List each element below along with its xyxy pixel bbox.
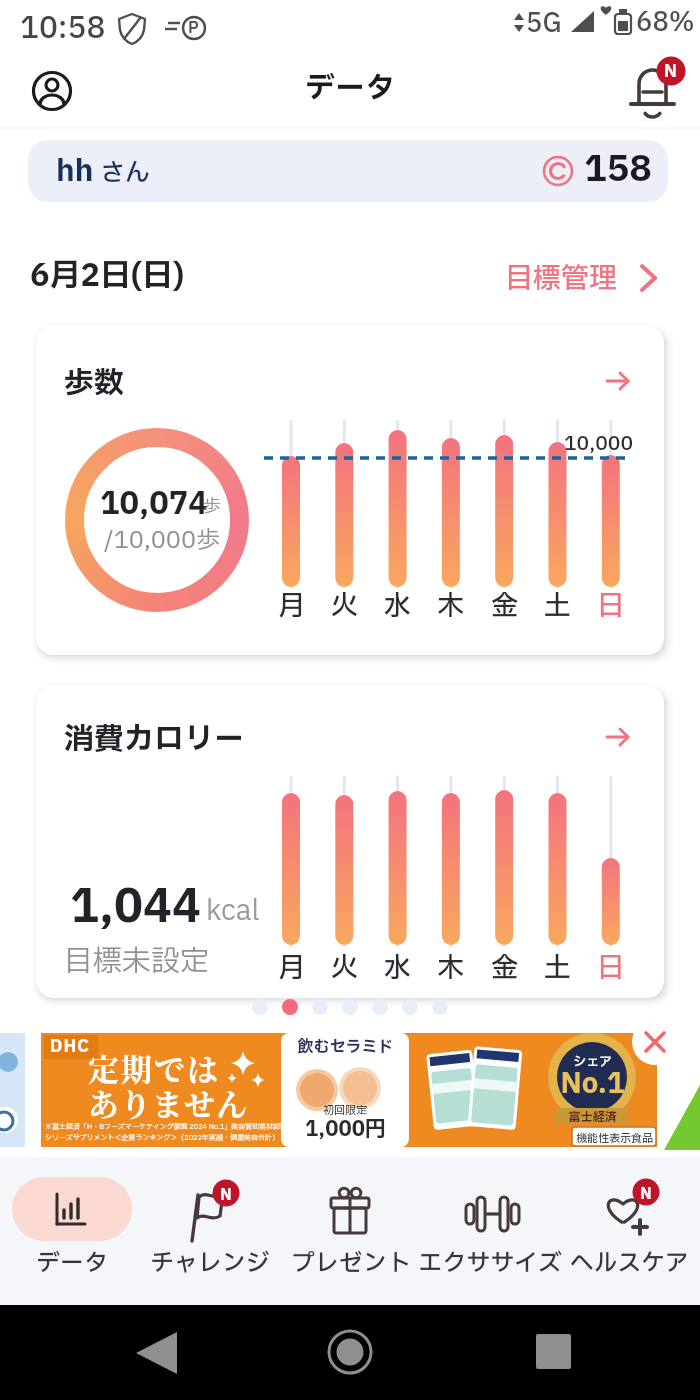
staticText: 68% xyxy=(636,3,695,42)
staticText: N xyxy=(220,1184,232,1206)
button[interactable] xyxy=(41,1033,657,1147)
staticText: 定期では xyxy=(88,1045,220,1090)
staticText: 1,000円 xyxy=(305,1114,386,1145)
staticText: 158 xyxy=(584,143,653,197)
staticText: ※富士経済「H・Bフーズマーケティング便覧 2024 No.1」美容賛助素材部門 xyxy=(45,1122,288,1132)
staticText: データ xyxy=(36,1246,108,1282)
staticText: 土 xyxy=(544,586,571,626)
staticText: チャレンジ xyxy=(150,1246,270,1282)
button[interactable] xyxy=(150,1172,272,1280)
staticText: 月 xyxy=(278,948,305,988)
staticText: 5G xyxy=(526,4,562,43)
staticText: 機能性表示食品 xyxy=(576,1130,653,1147)
staticText: 歩数 xyxy=(64,361,124,406)
staticText: /10,000歩 xyxy=(104,523,221,559)
staticText: 1,044 xyxy=(70,873,201,942)
staticText: P xyxy=(188,16,199,40)
button[interactable] xyxy=(120,1320,190,1385)
staticText: 土 xyxy=(544,948,571,988)
staticText: エクササイズ xyxy=(418,1246,562,1282)
staticText: 目標管理 xyxy=(505,258,618,300)
button[interactable] xyxy=(36,685,664,998)
staticText: 金 xyxy=(491,586,518,626)
staticText: 10:58 xyxy=(20,6,106,51)
staticText: 水 xyxy=(384,586,411,626)
staticText: 目標未設定 xyxy=(64,940,210,983)
staticText: 火 xyxy=(331,948,358,988)
staticText: 木 xyxy=(437,586,464,626)
staticText: さん xyxy=(100,155,151,192)
staticText: 木 xyxy=(437,948,464,988)
staticText: 10,000 xyxy=(564,429,634,459)
button[interactable] xyxy=(28,140,668,202)
staticText: 消費カロリー xyxy=(64,717,244,762)
staticText: N xyxy=(640,1183,652,1205)
staticText: No.1 xyxy=(560,1063,625,1105)
button[interactable] xyxy=(290,1172,412,1280)
button[interactable] xyxy=(632,1019,678,1065)
staticText: ありません xyxy=(88,1080,248,1125)
staticText: 金 xyxy=(491,948,518,988)
staticText: 火 xyxy=(331,586,358,626)
staticText: 月 xyxy=(278,586,305,626)
staticText: N xyxy=(664,59,677,84)
staticText: DHC xyxy=(50,1034,90,1059)
staticText: hh xyxy=(56,149,94,194)
staticText: 富士経済 xyxy=(568,1108,617,1126)
button[interactable] xyxy=(28,66,78,116)
staticText: シリーズサプリメント＜企業ランキング＞（2022年実績・健康美容合計） xyxy=(45,1133,279,1143)
button[interactable] xyxy=(566,1172,691,1280)
staticText: 6月2日(日) xyxy=(30,253,185,299)
staticText: プレゼント xyxy=(291,1246,411,1282)
staticText: シェア xyxy=(573,1052,612,1071)
staticText: 初回限定 xyxy=(323,1102,367,1119)
button[interactable] xyxy=(428,1172,553,1280)
staticText: 10,074 xyxy=(100,481,208,527)
staticText: ヘルスケア xyxy=(569,1246,689,1282)
staticText: 日 xyxy=(597,586,624,626)
button[interactable] xyxy=(495,250,670,300)
staticText: kcal xyxy=(206,890,260,932)
staticText: 飲むセラミド xyxy=(297,1035,394,1059)
staticText: 歩 xyxy=(203,493,221,520)
button[interactable] xyxy=(520,1320,590,1385)
staticText: 日 xyxy=(597,948,624,988)
button[interactable] xyxy=(625,60,685,115)
staticText: データ xyxy=(305,66,395,111)
button[interactable] xyxy=(10,1172,132,1280)
button[interactable] xyxy=(315,1320,385,1385)
button[interactable] xyxy=(36,325,664,655)
staticText: 水 xyxy=(384,948,411,988)
